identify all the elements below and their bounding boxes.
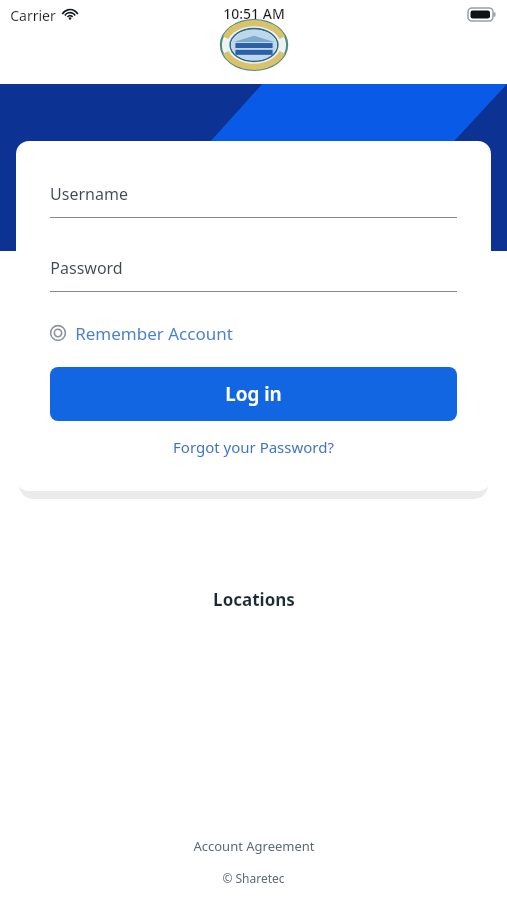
button[interactable]: Remember Account — [50, 319, 457, 347]
staticText: Forgot your Password? — [173, 437, 334, 457]
button[interactable]: Password — [50, 257, 457, 291]
staticText: Password — [50, 257, 123, 279]
staticText: 10:51 AM — [223, 4, 285, 23]
button[interactable]: Username — [50, 183, 457, 217]
staticText: Username — [50, 183, 128, 205]
button[interactable]: Account Agreement — [189, 833, 319, 859]
button[interactable]: Forgot your Password? — [50, 430, 457, 464]
button[interactable]: Locations — [213, 588, 295, 611]
staticText: Carrier — [10, 6, 56, 25]
staticText: Account Agreement — [193, 837, 315, 855]
staticText: Log in — [225, 381, 282, 407]
staticText: Remember Account — [75, 322, 233, 345]
staticText: Locations — [213, 588, 295, 611]
staticText: © Sharetec — [222, 870, 285, 886]
button[interactable]: Log in — [50, 367, 457, 421]
